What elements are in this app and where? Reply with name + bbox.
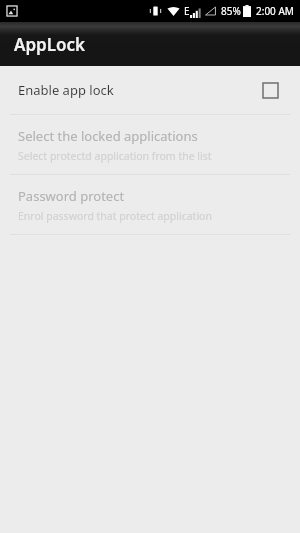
staticText: Select the locked applications — [18, 127, 198, 145]
button[interactable]: Enable app lock checkbox — [256, 76, 284, 104]
staticText: E — [184, 4, 190, 18]
staticText: 85% — [221, 4, 241, 18]
staticText: Enable app lock — [18, 81, 114, 99]
staticText: Enrol password that protect application — [18, 209, 212, 223]
staticText: Select protectd application from the lis… — [18, 149, 212, 163]
staticText: AppLock — [14, 33, 86, 56]
button[interactable]: Enable app lock — [0, 66, 300, 114]
button[interactable]: Password protect — [0, 175, 300, 234]
button[interactable]: Select the locked applications — [0, 115, 300, 174]
staticText: 2:00 AM — [256, 4, 294, 18]
staticText: Password protect — [18, 187, 125, 205]
